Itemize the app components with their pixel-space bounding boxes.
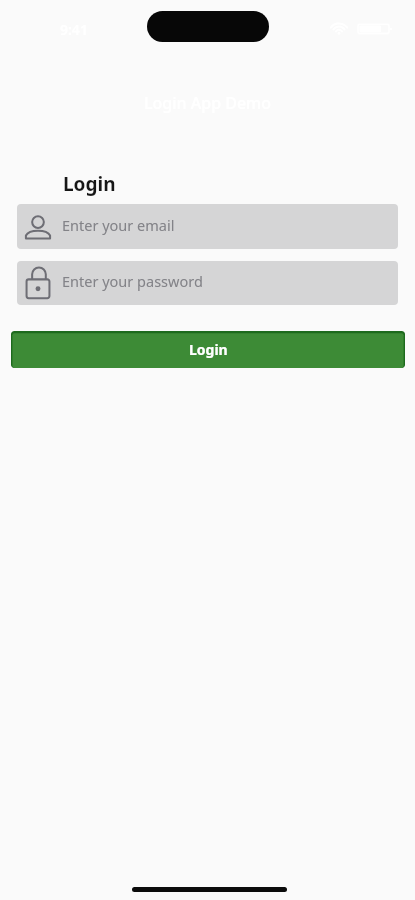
staticText: Login xyxy=(63,171,116,197)
other: Email xyxy=(25,214,51,240)
other: Password xyxy=(25,267,51,300)
button[interactable]: Email xyxy=(17,204,398,249)
staticText: Login xyxy=(189,340,228,359)
staticText: Enter your password xyxy=(62,271,203,291)
button[interactable]: Password xyxy=(17,261,398,305)
button[interactable]: Login xyxy=(11,331,405,368)
staticText: Enter your email xyxy=(62,215,175,235)
